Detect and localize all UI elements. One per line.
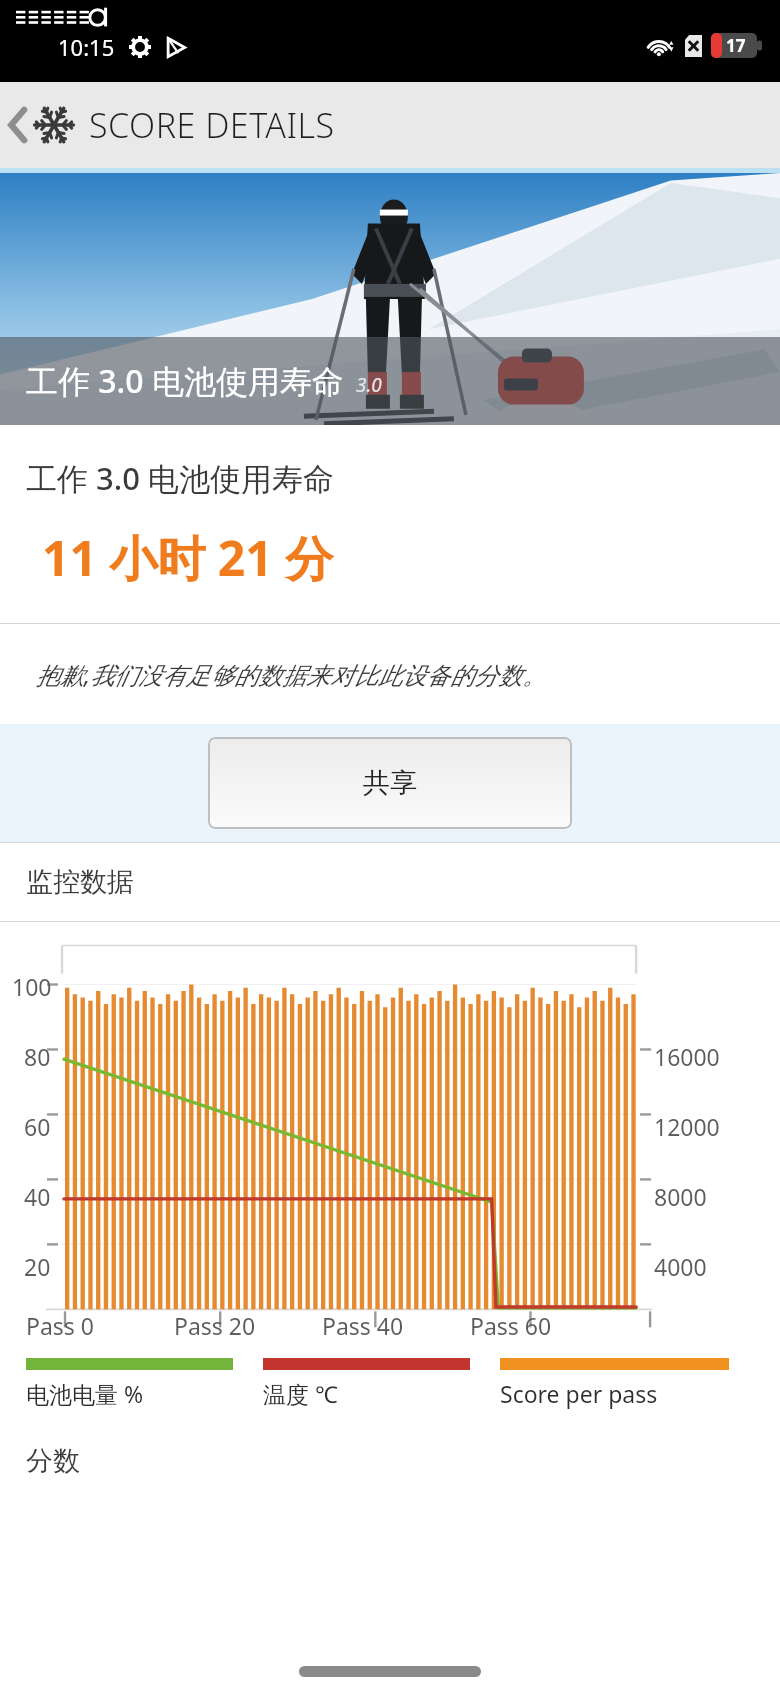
- staticText: 4000: [654, 1251, 707, 1282]
- staticText: 共享: [363, 766, 417, 800]
- staticText: 抱歉,我们没有足够的数据来对比此设备的分数。: [36, 658, 547, 691]
- staticText: 20: [24, 1251, 51, 1282]
- staticText: Pass 40: [322, 1310, 404, 1341]
- staticText: 12000: [654, 1111, 720, 1142]
- staticText: 分数: [26, 1444, 80, 1478]
- staticText: Pass 20: [174, 1310, 256, 1341]
- staticText: 温度 ℃: [263, 1378, 338, 1409]
- staticText: 工作 3.0 电池使用寿命: [26, 457, 335, 499]
- staticText: 17: [726, 34, 746, 57]
- staticText: SCORE DETAILS: [89, 102, 335, 148]
- staticText: 40: [24, 1181, 51, 1212]
- staticText: Pass 0: [26, 1310, 94, 1341]
- other: Back: [7, 105, 28, 145]
- staticText: Pass 60: [470, 1310, 552, 1341]
- staticText: 10:15: [58, 32, 115, 62]
- staticText: 电池电量 %: [26, 1378, 144, 1409]
- staticText: 16000: [654, 1041, 720, 1072]
- staticText: 8000: [654, 1181, 707, 1212]
- button[interactable]: 共享: [208, 737, 572, 829]
- staticText: 工作 3.0 电池使用寿命: [26, 359, 344, 403]
- staticText: 11 小时 21 分: [42, 525, 334, 591]
- staticText: 100: [12, 971, 52, 1002]
- staticText: 监控数据: [26, 865, 134, 899]
- staticText: 80: [24, 1041, 51, 1072]
- staticText: Score per pass: [500, 1378, 658, 1409]
- button[interactable]: Back: [0, 82, 780, 168]
- staticText: 60: [24, 1111, 51, 1142]
- staticText: 3.0: [356, 372, 382, 398]
